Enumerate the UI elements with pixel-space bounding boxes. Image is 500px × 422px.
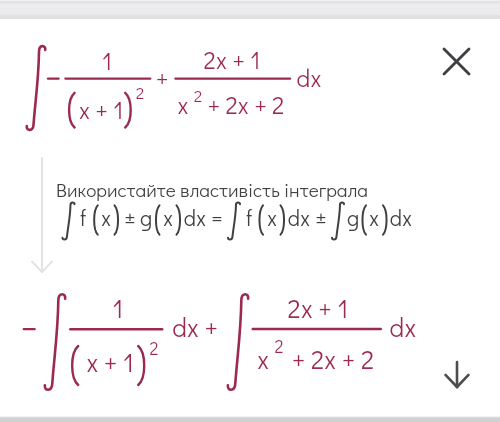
staticText: + 2x + 2 <box>191 88 301 122</box>
staticText: x <box>361 203 387 234</box>
staticText: g <box>340 203 366 234</box>
staticText: 2 <box>266 334 292 359</box>
staticText: 1 <box>98 291 138 328</box>
staticText: + 2x + 2 <box>278 342 388 379</box>
staticText: 2 <box>141 336 167 361</box>
staticText: x <box>259 203 285 234</box>
staticText: x <box>155 203 181 234</box>
staticText: 2 <box>185 84 211 108</box>
staticText: x + 1 <box>75 345 145 382</box>
staticText: + <box>147 61 177 95</box>
staticText: 1 <box>87 44 127 78</box>
staticText: g <box>133 203 159 234</box>
staticText: dx + <box>160 310 230 347</box>
staticText: x + 1 <box>66 93 136 127</box>
staticText: ± <box>308 203 334 234</box>
staticText: dx <box>284 61 334 95</box>
staticText: ± <box>117 203 143 234</box>
staticText: x <box>93 203 119 234</box>
staticText: x <box>248 342 278 379</box>
staticText: 2x + 1 <box>187 43 277 77</box>
staticText: 2x + 1 <box>273 291 363 328</box>
staticText: x <box>168 88 198 122</box>
staticText: Використайте властивість інтеграла <box>56 177 368 202</box>
staticText: dx <box>381 203 421 234</box>
staticText: = <box>204 203 230 234</box>
staticText: f <box>236 203 262 234</box>
staticText: f <box>70 203 96 234</box>
staticText: dx <box>175 203 215 234</box>
button[interactable]: Close <box>436 41 477 82</box>
staticText: dx <box>279 203 319 234</box>
staticText: 2 <box>127 81 153 105</box>
staticText: dx <box>378 310 428 347</box>
